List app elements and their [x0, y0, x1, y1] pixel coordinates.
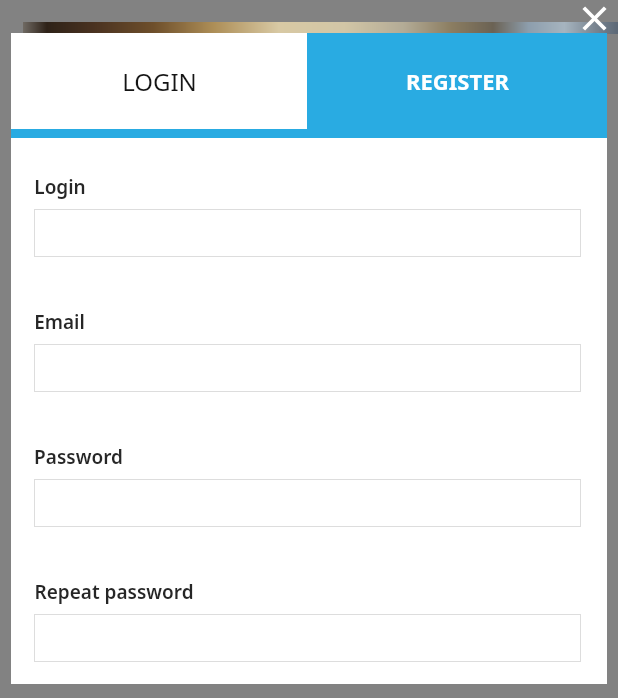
staticText: Repeat password	[34, 579, 194, 605]
button[interactable]: REGISTER	[307, 33, 607, 129]
button[interactable]	[34, 479, 581, 527]
button[interactable]: LOGIN	[11, 33, 307, 129]
staticText: Password	[34, 444, 123, 470]
button[interactable]	[34, 344, 581, 392]
button[interactable]	[34, 614, 581, 662]
staticText: Email	[34, 309, 85, 335]
button[interactable]	[34, 209, 581, 257]
staticText: REGISTER	[406, 66, 509, 96]
button[interactable]: Close	[572, 0, 616, 37]
staticText: Login	[34, 174, 86, 200]
staticText: LOGIN	[122, 65, 197, 98]
